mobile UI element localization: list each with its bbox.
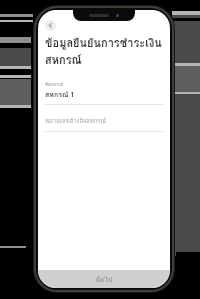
- staticText: สหกรณ์ 1: [45, 89, 75, 100]
- staticText: ถัดไป: [95, 274, 113, 285]
- button[interactable]: Back: [45, 20, 56, 31]
- button[interactable]: ถัดไป: [38, 270, 170, 288]
- staticText: หมายเลขอ้างอิงสหกรณ์: [45, 116, 107, 126]
- button[interactable]: ชื่อสหกรณ์: [38, 81, 170, 105]
- button[interactable]: หมายเลขอ้างอิงสหกรณ์: [38, 116, 170, 132]
- staticText: ชื่อสหกรณ์: [45, 81, 64, 87]
- staticText: สหกรณ์: [45, 51, 82, 68]
- staticText: ข้อมูลยืนยันการชำระเงิน: [45, 34, 162, 51]
